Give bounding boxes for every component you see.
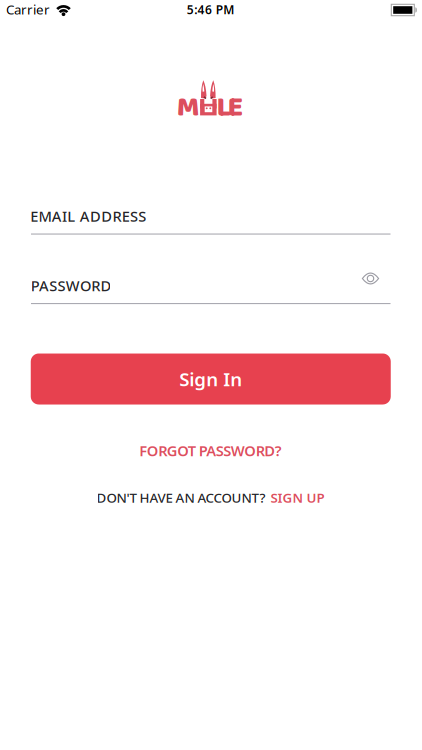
button[interactable]: Show password <box>356 267 384 290</box>
staticText: Sign In <box>179 367 242 391</box>
staticText: L <box>216 85 231 130</box>
staticText: DON'T HAVE AN ACCOUNT? <box>96 489 265 506</box>
button[interactable]: Sign In <box>31 353 391 404</box>
staticText: 5:46 PM <box>187 1 234 17</box>
staticText: FORGOT PASSWORD? <box>139 441 282 460</box>
staticText: E <box>227 85 243 130</box>
staticText: Carrier <box>6 0 50 18</box>
button[interactable]: FORGOT PASSWORD? <box>135 437 286 464</box>
button[interactable]: SIGN UP <box>270 489 324 506</box>
staticText: SIGN UP <box>270 489 324 506</box>
staticText: EMAIL ADDRESS <box>30 206 146 226</box>
staticText: PASSWORD <box>31 276 111 295</box>
staticText: M <box>177 85 200 130</box>
button[interactable]: Password <box>31 277 390 304</box>
button[interactable]: Email address <box>31 208 390 235</box>
